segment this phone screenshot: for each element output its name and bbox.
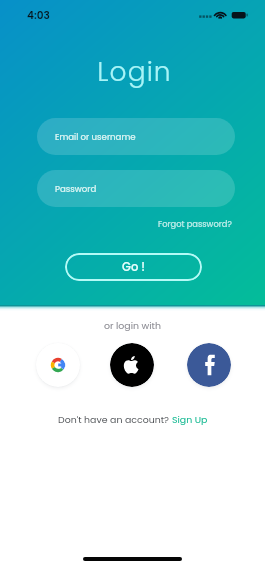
staticText: Sign Up (172, 413, 208, 426)
staticText: or login with (0, 319, 265, 332)
staticText: Email or username (55, 131, 136, 143)
button[interactable]: Don't have an account? (54, 411, 212, 428)
staticText: Don't have an account? (58, 413, 172, 426)
staticText: Password (55, 183, 97, 195)
staticText: Go ! (122, 259, 145, 275)
staticText: Login (2, 53, 265, 90)
button[interactable]: Go ! (65, 253, 202, 281)
button[interactable]: Sign in with Google (36, 343, 80, 387)
button[interactable]: Password (37, 170, 235, 207)
button[interactable]: Forgot password? (156, 216, 234, 232)
button[interactable]: Sign in with Facebook (187, 343, 231, 387)
staticText: 4:03 (27, 8, 50, 23)
button[interactable]: Sign in with Apple (110, 343, 154, 387)
button[interactable]: Email or username (37, 118, 235, 155)
